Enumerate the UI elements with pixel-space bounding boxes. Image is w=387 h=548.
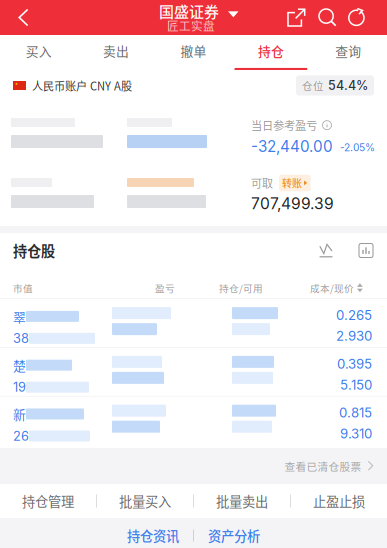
- staticText: 持仓资讯: [127, 526, 179, 545]
- button[interactable]: 成本/现价: [310, 281, 363, 295]
- staticText: 资产分析: [208, 526, 260, 545]
- staticText: 批量买入: [119, 491, 171, 511]
- staticText: -2.05%: [340, 141, 375, 154]
- staticText: 盈亏: [155, 281, 175, 295]
- staticText: 止盈止损: [313, 491, 365, 511]
- staticText: 仓位: [302, 78, 324, 93]
- staticText: 匠工实盘: [167, 17, 215, 34]
- button[interactable]: 撤单: [155, 35, 232, 70]
- staticText: 买入: [26, 41, 52, 60]
- staticText: 当日参考盈亏: [251, 117, 317, 133]
- staticText: 批量卖出: [216, 491, 268, 511]
- button[interactable]: 楚: [0, 348, 387, 396]
- staticText: 持仓股: [13, 240, 55, 261]
- button[interactable]: Refresh: [347, 7, 366, 27]
- staticText: 新: [13, 405, 26, 423]
- staticText: 转账: [282, 176, 302, 190]
- staticText: 可取: [251, 175, 273, 191]
- button[interactable]: 批量买入: [97, 484, 193, 518]
- staticText: 人民币账户 CNY A股: [32, 77, 132, 94]
- staticText: 楚: [13, 356, 26, 374]
- staticText: 查询: [335, 41, 361, 60]
- button[interactable]: Back: [18, 0, 60, 35]
- staticText: 翠: [13, 307, 26, 326]
- button[interactable]: 止盈止损: [291, 484, 387, 518]
- staticText: 0.265: [336, 307, 372, 323]
- staticText: 707,499.39: [251, 194, 334, 213]
- button[interactable]: 资产分析: [208, 518, 260, 548]
- button[interactable]: 查看已清仓股票: [284, 448, 387, 484]
- staticText: 持仓管理: [22, 491, 74, 511]
- button[interactable]: 买入: [0, 35, 77, 70]
- button[interactable]: 持仓管理: [0, 484, 96, 518]
- staticText: 19: [13, 379, 26, 395]
- staticText: 市值: [13, 281, 33, 295]
- staticText: 54.4%: [328, 78, 368, 93]
- staticText: 0.815: [339, 405, 372, 421]
- staticText: 26: [13, 428, 29, 444]
- staticText: 查看已清仓股票: [284, 458, 361, 474]
- button[interactable]: 卖出: [77, 35, 155, 70]
- button[interactable]: 批量卖出: [194, 484, 290, 518]
- button[interactable]: 新: [0, 397, 387, 445]
- staticText: 5.150: [340, 377, 372, 393]
- button[interactable]: Bar chart: [359, 243, 373, 257]
- button[interactable]: Info: [322, 120, 332, 130]
- button[interactable]: 翠: [0, 299, 387, 347]
- button[interactable]: Share: [287, 8, 306, 27]
- staticText: 撤单: [180, 41, 206, 60]
- button[interactable]: 持仓资讯: [127, 518, 179, 548]
- staticText: 9.310: [340, 426, 372, 442]
- button[interactable]: 持仓: [232, 35, 310, 70]
- staticText: 持仓: [258, 41, 284, 60]
- staticText: 2.930: [336, 328, 372, 344]
- staticText: -32,440.00: [251, 137, 333, 156]
- button[interactable]: Search: [318, 8, 337, 27]
- staticText: 38: [13, 331, 29, 346]
- staticText: 持仓/可用: [219, 281, 263, 295]
- staticText: 0.395: [337, 356, 372, 372]
- staticText: 成本/现价: [310, 281, 354, 295]
- staticText: 卖出: [103, 41, 129, 60]
- staticText: 国盛证券: [159, 0, 219, 22]
- button[interactable]: 转账: [279, 175, 311, 191]
- button[interactable]: Trend chart: [319, 243, 333, 258]
- button[interactable]: 查询: [310, 35, 387, 70]
- button[interactable]: 国盛证券: [159, 0, 241, 35]
